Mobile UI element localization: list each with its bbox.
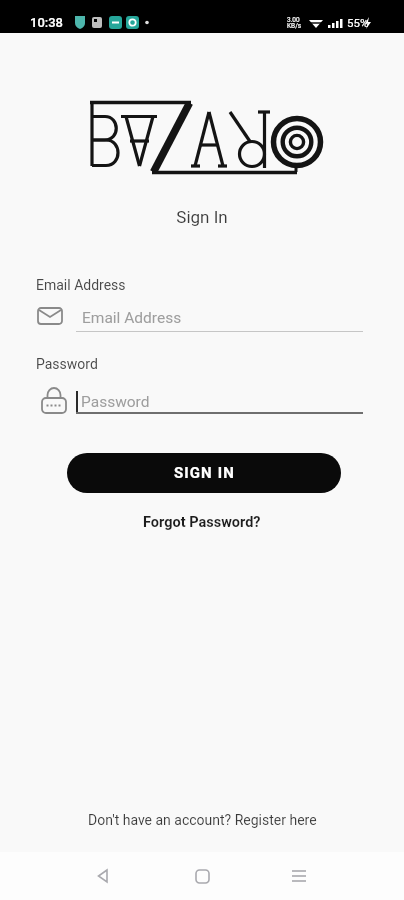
- button[interactable]: [36, 303, 363, 333]
- button[interactable]: [281, 858, 317, 894]
- staticText: 10:38: [30, 15, 64, 30]
- staticText: Password: [36, 356, 98, 372]
- button[interactable]: [184, 858, 220, 894]
- staticText: Password: [81, 393, 150, 411]
- button[interactable]: SIGN IN: [67, 453, 341, 493]
- staticText: KB/s: [287, 22, 302, 30]
- button[interactable]: Forgot Password?: [143, 514, 261, 531]
- button[interactable]: Don't have an account? Register here: [88, 812, 317, 828]
- staticText: SIGN IN: [174, 464, 235, 482]
- staticText: Email Address: [36, 277, 126, 293]
- staticText: 3.00: [287, 16, 300, 24]
- button[interactable]: [36, 385, 363, 415]
- staticText: Email Address: [82, 309, 182, 327]
- button[interactable]: [85, 858, 121, 894]
- staticText: Sign In: [0, 207, 404, 227]
- staticText: 55%: [347, 16, 369, 29]
